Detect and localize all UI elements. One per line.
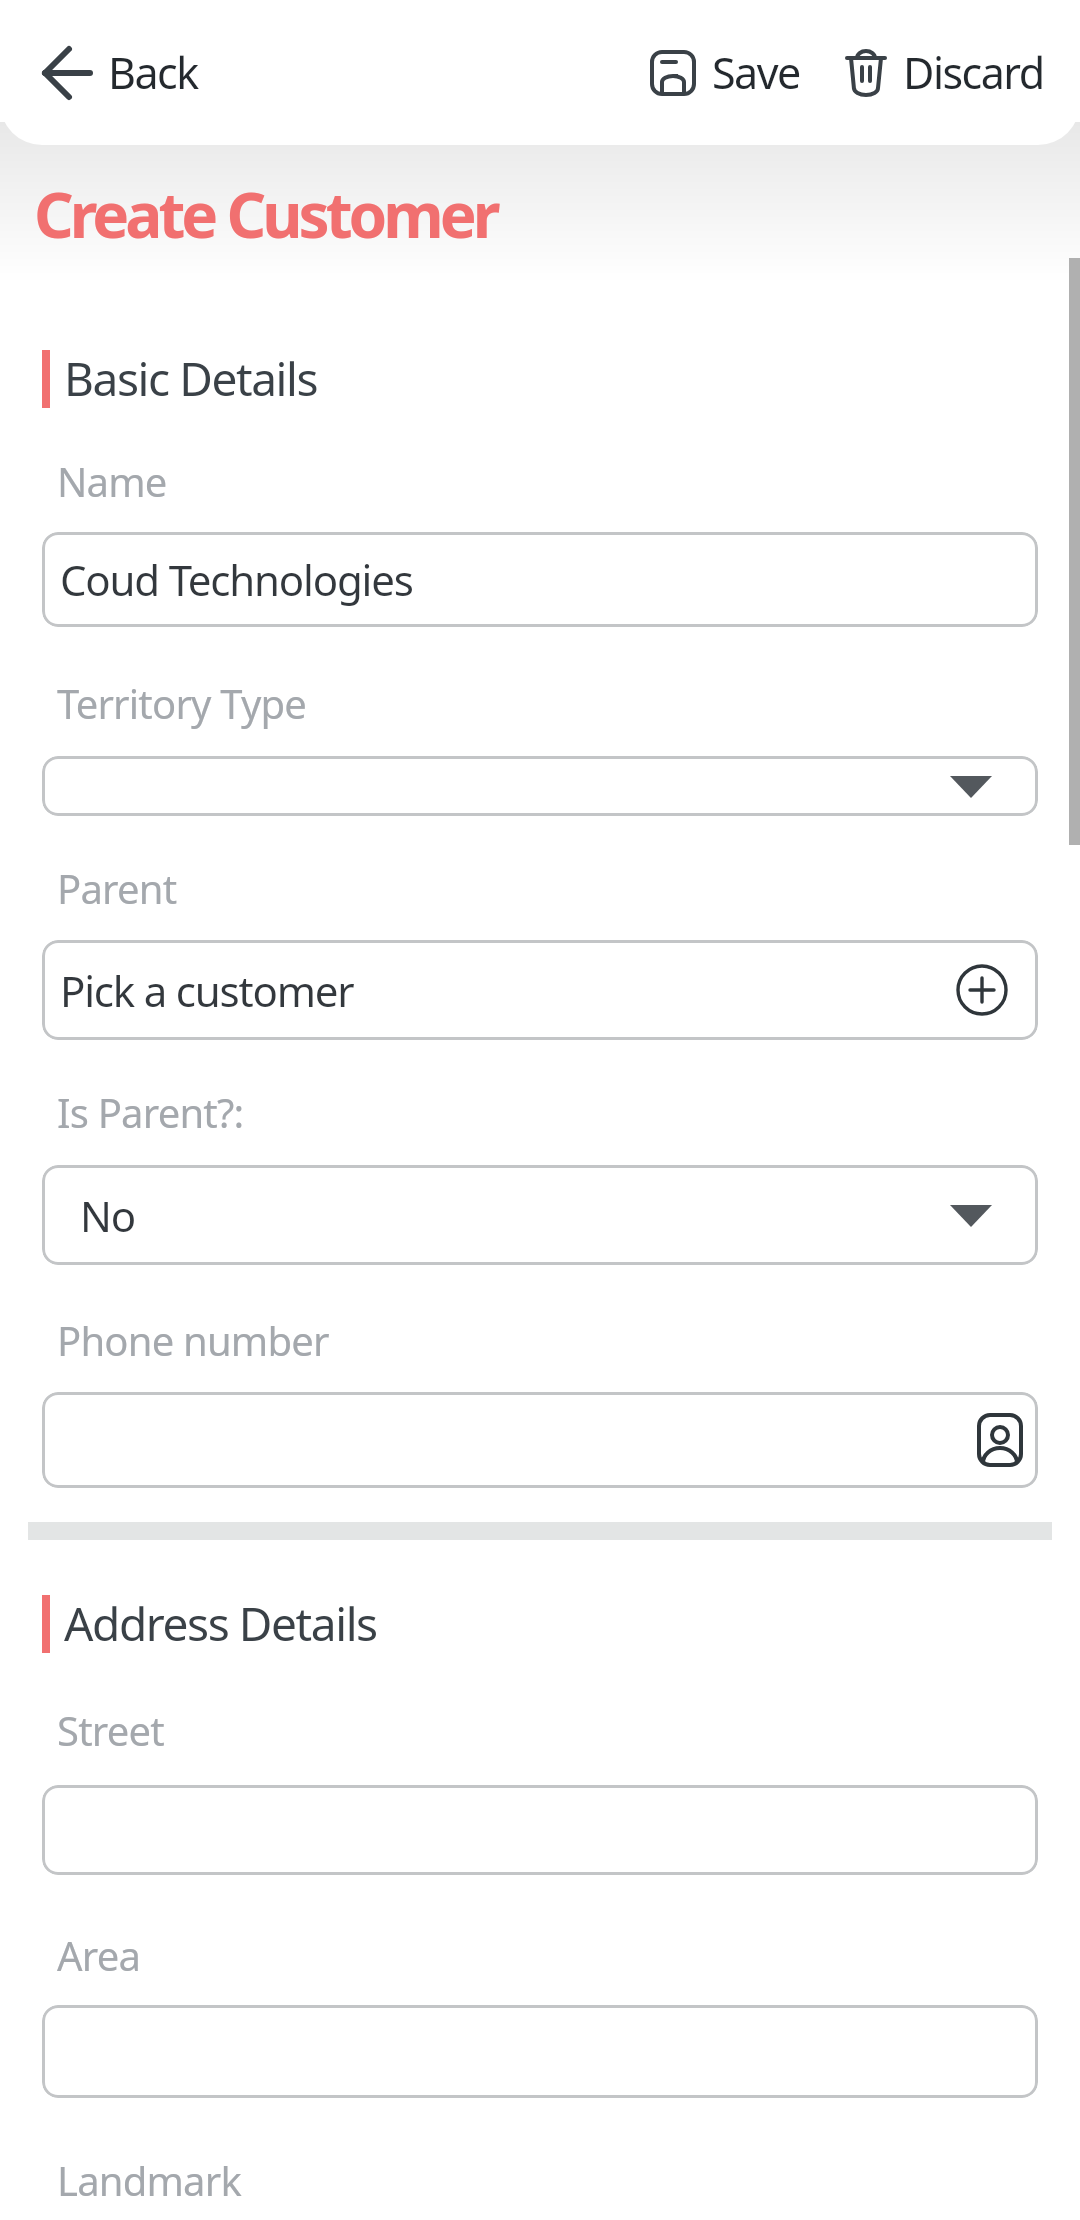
button[interactable]: Coud Technologies (42, 532, 1038, 627)
button[interactable]: Save (650, 43, 800, 102)
button[interactable]: No (42, 1165, 1038, 1265)
staticText: Pick a customer (60, 962, 354, 1019)
staticText: Parent (57, 861, 177, 915)
staticText: Coud Technologies (60, 551, 413, 608)
staticText: Save (712, 43, 800, 102)
staticText: Discard (903, 43, 1044, 102)
staticText: Back (108, 43, 198, 102)
staticText: No (80, 1187, 135, 1244)
staticText: Is Parent?: (57, 1085, 244, 1139)
staticText: Address Details (64, 1592, 377, 1655)
staticText: Phone number (57, 1313, 329, 1367)
staticText: Basic Details (64, 347, 318, 410)
staticText: Street (57, 1703, 164, 1757)
button[interactable]: Discard (845, 43, 1044, 102)
button[interactable] (42, 756, 1038, 816)
staticText: Area (57, 1928, 141, 1982)
button[interactable] (42, 1392, 1038, 1488)
staticText: Territory Type (57, 676, 307, 730)
button[interactable] (42, 2005, 1038, 2098)
staticText: Create Customer (34, 172, 497, 256)
staticText: Landmark (57, 2153, 242, 2207)
button[interactable] (42, 1785, 1038, 1875)
staticText: Name (57, 454, 167, 508)
button[interactable]: Back (40, 43, 198, 102)
button[interactable]: Pick a customer (42, 940, 1038, 1040)
